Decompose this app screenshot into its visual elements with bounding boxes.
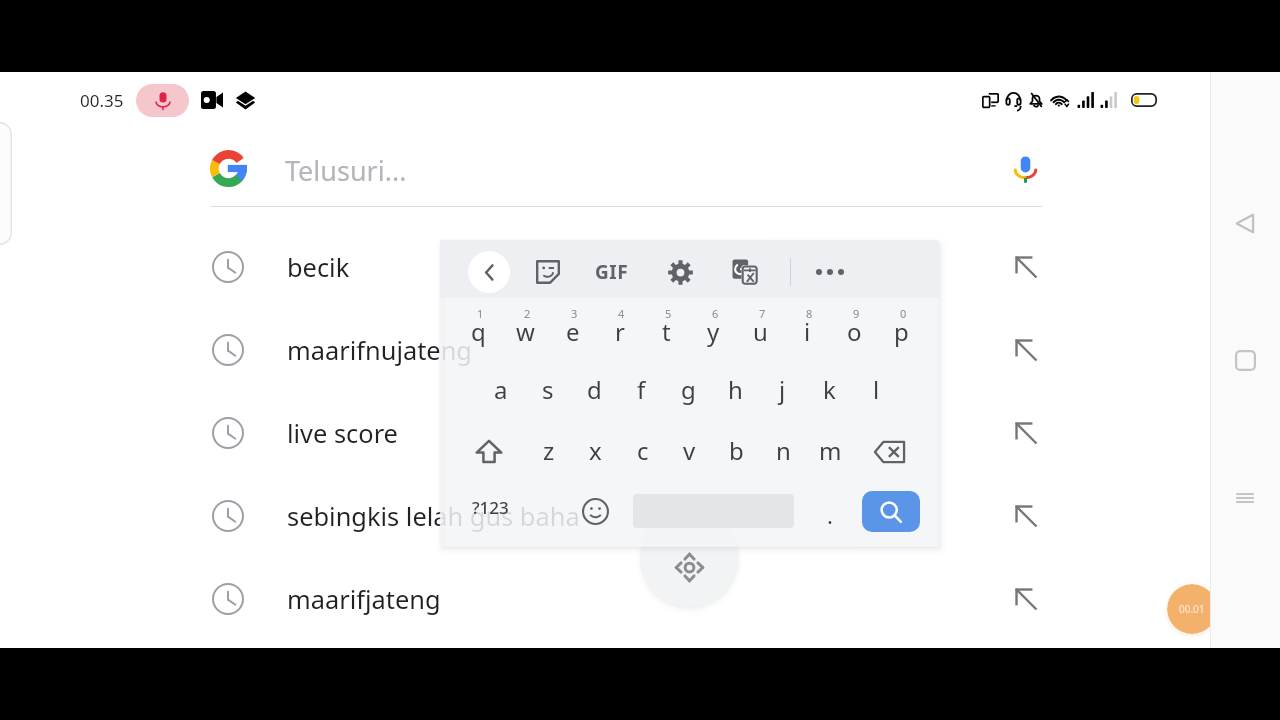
- staticText: p: [894, 315, 909, 348]
- staticText: 00.01: [1179, 602, 1205, 616]
- button[interactable]: t: [643, 300, 690, 360]
- staticText: ?123: [472, 496, 509, 519]
- button[interactable]: becik: [200, 239, 1080, 295]
- button[interactable]: y: [690, 300, 737, 360]
- staticText: t: [662, 315, 671, 348]
- button[interactable]: n: [760, 419, 807, 479]
- staticText: v: [683, 434, 696, 467]
- button[interactable]: l: [853, 358, 900, 418]
- button[interactable]: Voice search: [1003, 146, 1047, 190]
- staticText: n: [776, 434, 791, 467]
- button[interactable]: h: [712, 358, 759, 418]
- button[interactable]: q: [455, 300, 502, 360]
- staticText: y: [707, 315, 720, 348]
- button[interactable]: w: [502, 300, 549, 360]
- button[interactable]: Use suggestion: [1005, 246, 1047, 288]
- button[interactable]: f: [618, 358, 665, 418]
- staticText: GIF: [595, 259, 629, 285]
- button[interactable]: r: [596, 300, 643, 360]
- button[interactable]: .: [810, 492, 850, 538]
- button[interactable]: Recent apps: [1223, 476, 1267, 520]
- staticText: o: [847, 315, 862, 348]
- button[interactable]: Settings: [661, 253, 699, 291]
- staticText: g: [681, 373, 696, 406]
- button[interactable]: Back: [1223, 201, 1267, 245]
- staticText: m: [819, 434, 842, 467]
- button[interactable]: k: [806, 358, 853, 418]
- staticText: 1: [477, 306, 484, 321]
- button[interactable]: Shift: [465, 422, 513, 482]
- button[interactable]: Move keyboard: [640, 509, 738, 607]
- staticText: x: [589, 434, 602, 467]
- button[interactable]: GIF: [586, 253, 638, 291]
- staticText: b: [729, 434, 744, 467]
- button[interactable]: Use suggestion: [1005, 329, 1047, 371]
- staticText: 0: [900, 306, 907, 321]
- button[interactable]: e: [549, 300, 596, 360]
- button[interactable]: p: [878, 300, 925, 360]
- button[interactable]: v: [666, 419, 713, 479]
- button[interactable]: More options: [808, 253, 852, 291]
- staticText: f: [637, 373, 646, 406]
- button[interactable]: i: [784, 300, 831, 360]
- staticText: i: [804, 315, 811, 348]
- staticText: becik: [287, 250, 350, 285]
- staticText: z: [543, 434, 555, 467]
- button[interactable]: Use suggestion: [1005, 578, 1047, 620]
- staticText: k: [823, 373, 836, 406]
- staticText: 8: [806, 306, 813, 321]
- button[interactable]: g: [665, 358, 712, 418]
- staticText: l: [873, 373, 880, 406]
- button[interactable]: ?123: [466, 484, 514, 530]
- button[interactable]: Backspace: [865, 422, 913, 482]
- staticText: 6: [712, 306, 719, 321]
- staticText: maarifjateng: [287, 582, 441, 617]
- button[interactable]: Use suggestion: [1005, 495, 1047, 537]
- button[interactable]: d: [571, 358, 618, 418]
- staticText: sebingkis lelah gus baha: [287, 499, 580, 534]
- button[interactable]: sebingkis lelah gus baha: [200, 488, 1080, 544]
- button[interactable]: Recording timer: [1167, 584, 1217, 634]
- staticText: a: [494, 373, 508, 406]
- button[interactable]: c: [619, 419, 666, 479]
- button[interactable]: x: [572, 419, 619, 479]
- button[interactable]: o: [831, 300, 878, 360]
- button[interactable]: b: [713, 419, 760, 479]
- staticText: j: [779, 373, 786, 406]
- button[interactable]: a: [477, 358, 524, 418]
- button[interactable]: u: [737, 300, 784, 360]
- button[interactable]: Home: [1223, 338, 1267, 382]
- button[interactable]: j: [759, 358, 806, 418]
- staticText: live score: [287, 416, 398, 451]
- button[interactable]: z: [525, 419, 572, 479]
- staticText: 00.35: [80, 89, 124, 112]
- staticText: 2: [524, 306, 531, 321]
- staticText: h: [728, 373, 743, 406]
- staticText: Telusuri...: [285, 152, 407, 189]
- staticText: e: [566, 315, 580, 348]
- button[interactable]: Close toolbar: [468, 251, 510, 293]
- button[interactable]: live score: [200, 405, 1080, 461]
- staticText: .: [827, 500, 833, 530]
- button[interactable]: Stickers: [529, 253, 567, 291]
- button[interactable]: Emoji: [573, 489, 617, 533]
- button[interactable]: Use suggestion: [1005, 412, 1047, 454]
- button[interactable]: maarifjateng: [200, 571, 1080, 627]
- staticText: 4: [618, 306, 625, 321]
- button[interactable]: s: [524, 358, 571, 418]
- button[interactable]: m: [807, 419, 854, 479]
- staticText: c: [637, 434, 649, 467]
- staticText: s: [542, 373, 554, 406]
- staticText: 3: [571, 306, 578, 321]
- button[interactable]: Recording microphone: [136, 84, 189, 117]
- staticText: 5: [665, 306, 672, 321]
- staticText: 9: [853, 306, 860, 321]
- button[interactable]: Search: [862, 491, 920, 532]
- staticText: q: [471, 315, 486, 348]
- button[interactable]: Translate: [726, 253, 764, 291]
- staticText: w: [516, 315, 535, 348]
- staticText: u: [753, 315, 768, 348]
- staticText: d: [587, 373, 602, 406]
- button[interactable]: maarifnujateng: [200, 322, 1080, 378]
